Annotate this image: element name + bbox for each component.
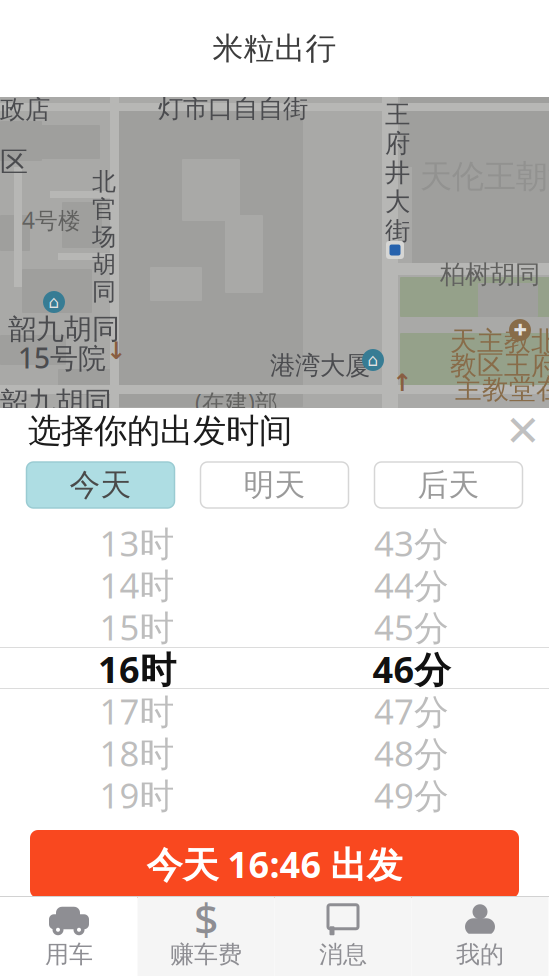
staticText: 15时 [99, 604, 174, 650]
staticText: ↑ [392, 369, 412, 396]
staticText: 港湾大厦 [270, 350, 370, 381]
staticText: 今天 [69, 466, 131, 504]
staticText: $ [194, 890, 218, 947]
staticText: 13时 [99, 520, 174, 566]
button[interactable]: 关闭 [497, 405, 549, 457]
staticText: ↓ [106, 337, 126, 364]
staticText: 45分 [374, 604, 449, 650]
staticText: 米粒出行 [212, 30, 336, 67]
staticText: 天伦王朝酒 [420, 157, 549, 196]
staticText: 井 [385, 157, 410, 188]
staticText: 街 [385, 215, 410, 247]
button[interactable]: 我的 [411, 897, 548, 976]
staticText: 王 [385, 99, 410, 130]
button[interactable]: 用车 [0, 897, 137, 976]
staticText: 48分 [374, 730, 449, 776]
staticText: (在建)部 [195, 387, 278, 417]
staticText: 主教堂在 [455, 373, 549, 406]
button[interactable]: 后天 [374, 462, 522, 508]
staticText: 17时 [99, 688, 174, 734]
staticText: 44分 [374, 562, 449, 608]
staticText: 同 [92, 277, 116, 306]
staticText: ⌂ [48, 292, 59, 312]
staticText: 大 [385, 186, 410, 217]
staticText: 14时 [99, 562, 174, 608]
staticText: 府 [385, 128, 410, 159]
staticText: 用车 [45, 940, 93, 969]
staticText: 47分 [374, 688, 449, 734]
staticText: 北 [92, 167, 116, 196]
staticText: ✕ [505, 407, 541, 455]
staticText: 柏树胡同 [440, 259, 540, 290]
staticText: 4号楼 [22, 205, 81, 235]
staticText: ⌂ [367, 350, 378, 370]
button[interactable]: $ [137, 897, 274, 976]
staticText: 43分 [374, 520, 449, 566]
staticText: 官 [92, 194, 116, 224]
staticText: 灯市口自自街 [158, 93, 308, 124]
button[interactable]: 消息 [274, 897, 411, 976]
button[interactable]: 明天 [200, 462, 348, 508]
staticText: 16时 [98, 645, 176, 693]
staticText: 49分 [374, 772, 449, 818]
staticText: 韶九胡同 [8, 312, 120, 346]
button[interactable]: 今天 [26, 462, 174, 508]
staticText: 场 [92, 222, 116, 251]
staticText: 天主教北京 [450, 325, 549, 358]
staticText: 今天 16:46 出发 [146, 840, 402, 888]
staticText: 明天 [243, 466, 305, 504]
staticText: 后天 [417, 466, 479, 504]
staticText: 46分 [372, 645, 450, 693]
staticText: 18时 [99, 730, 174, 776]
staticText: 选择你的出发时间 [28, 410, 292, 451]
staticText: 韶九胡同 [0, 385, 112, 419]
staticText: 15号院 [18, 339, 106, 376]
staticText: 胡 [92, 249, 116, 279]
staticText: 19时 [99, 772, 174, 818]
staticText: 区 [0, 145, 28, 179]
staticText: 赚车费 [170, 940, 242, 969]
staticText: 教区王府井 [450, 349, 549, 382]
staticText: 消息 [319, 940, 367, 969]
button[interactable]: 今天 16:46 出发 [30, 830, 519, 898]
staticText: 我的 [456, 940, 504, 969]
staticText: 政店 [0, 94, 50, 125]
staticText: ✚ [513, 321, 526, 339]
